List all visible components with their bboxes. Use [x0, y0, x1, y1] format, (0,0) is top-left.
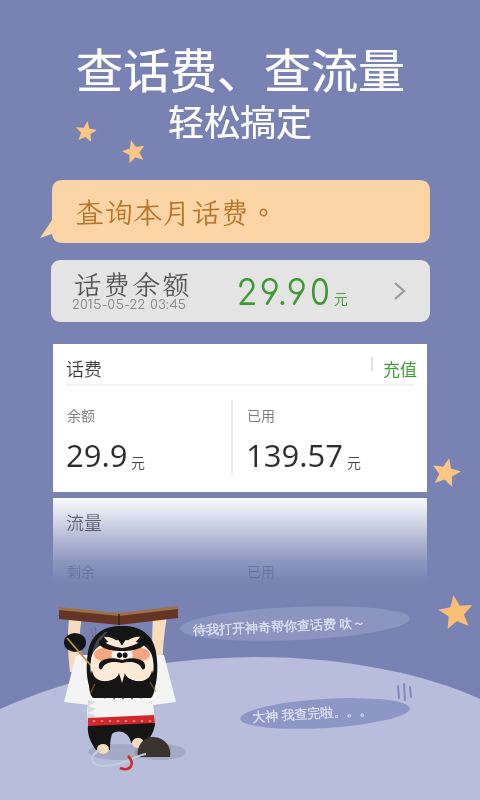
staticText: 29.9	[66, 434, 128, 476]
staticText: 流量	[66, 509, 102, 535]
button[interactable]: 充值	[383, 356, 417, 381]
staticText: 139.57	[246, 434, 343, 476]
staticText: 话费余额	[73, 266, 192, 303]
staticText: 轻松搞定	[168, 94, 313, 146]
button[interactable]: 查询本月话费。	[52, 180, 430, 243]
staticText: 元	[334, 291, 348, 309]
staticText: 充值	[383, 356, 417, 381]
button[interactable]: 话费余额	[51, 260, 430, 322]
staticText: 29.90	[237, 275, 334, 313]
staticText: 元	[131, 452, 145, 472]
staticText: 元	[347, 452, 361, 472]
other: View details	[391, 281, 411, 301]
staticText: 待我打开神奇帮你查话费 呔～	[193, 613, 366, 639]
staticText: 话费	[66, 355, 102, 381]
staticText: 余额	[67, 405, 95, 425]
staticText: 已用	[247, 405, 275, 425]
staticText: 剩余	[67, 561, 95, 581]
staticText: 查询本月话费。	[75, 193, 279, 231]
staticText: 已用	[247, 561, 275, 581]
staticText: 查话费、查流量	[76, 33, 405, 101]
staticText: 大神 我查完啦。。。	[252, 700, 373, 726]
staticText: 2015-05-22 03:45	[72, 298, 187, 312]
